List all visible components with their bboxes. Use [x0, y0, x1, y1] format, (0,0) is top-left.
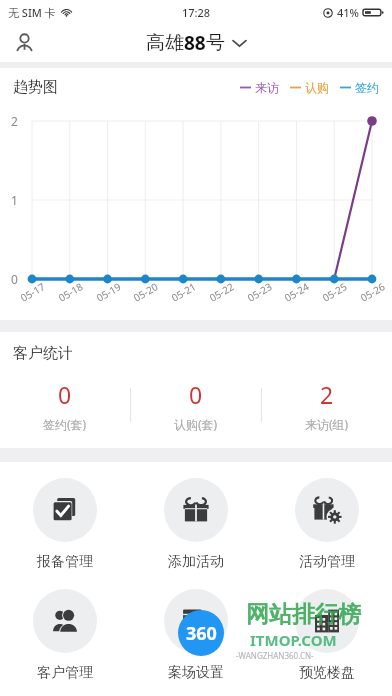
- staticText: 签约(套): [43, 416, 87, 432]
- staticText: 05-22: [206, 279, 237, 305]
- button[interactable]: 0: [131, 379, 261, 432]
- button[interactable]: 2: [262, 379, 392, 432]
- staticText: 2: [11, 113, 18, 129]
- staticText: 0: [58, 379, 72, 410]
- staticText: 0: [11, 271, 18, 287]
- staticText: 案场设置: [168, 664, 224, 682]
- staticText: 来访: [255, 80, 279, 95]
- staticText: 网站排行榜: [246, 600, 361, 629]
- staticText: 认购(套): [174, 416, 218, 432]
- button[interactable]: 添加活动: [130, 478, 261, 571]
- button[interactable]: Account: [6, 25, 42, 61]
- staticText: 88: [184, 30, 206, 56]
- staticText: 添加活动: [168, 553, 224, 571]
- staticText: 活动管理: [299, 553, 355, 571]
- staticText: 360: [186, 621, 217, 646]
- button[interactable]: 预览楼盘: [261, 589, 392, 682]
- staticText: 05-19: [93, 279, 124, 305]
- staticText: -WANGZHAN360.CN-: [236, 650, 314, 661]
- staticText: 签约: [355, 80, 379, 95]
- staticText: 高雄: [146, 31, 184, 55]
- staticText: 05-20: [130, 279, 161, 305]
- staticText: 客户管理: [37, 664, 93, 682]
- staticText: 05-18: [55, 279, 86, 305]
- staticText: 05-26: [357, 279, 388, 305]
- staticText: 号: [206, 31, 225, 55]
- button[interactable]: 认购: [290, 80, 329, 95]
- staticText: 来访(组): [305, 416, 349, 432]
- button[interactable]: 报备管理: [0, 478, 130, 571]
- button[interactable]: 签约: [340, 80, 379, 95]
- staticText: 41%: [337, 5, 359, 20]
- button[interactable]: 案场设置: [130, 589, 261, 682]
- button[interactable]: 活动管理: [261, 478, 392, 571]
- staticText: 05-17: [17, 279, 48, 305]
- staticText: 17:28: [182, 5, 211, 20]
- staticText: 报备管理: [37, 553, 93, 571]
- staticText: 05-21: [168, 279, 199, 305]
- staticText: 05-25: [319, 279, 350, 305]
- button[interactable]: 高雄: [146, 30, 246, 56]
- button[interactable]: 来访: [240, 80, 279, 95]
- button[interactable]: 0: [0, 379, 130, 432]
- button[interactable]: 客户管理: [0, 589, 130, 682]
- staticText: 趋势图: [13, 78, 58, 97]
- staticText: 无 SIM 卡: [8, 5, 56, 20]
- staticText: 2: [320, 379, 334, 410]
- staticText: 05-24: [281, 279, 312, 305]
- staticText: ITMOP.COM: [250, 630, 337, 650]
- staticText: 客户统计: [13, 344, 73, 363]
- staticText: 1: [11, 192, 18, 208]
- staticText: 预览楼盘: [299, 664, 355, 682]
- staticText: 认购: [305, 80, 329, 95]
- staticText: 05-23: [244, 279, 275, 305]
- staticText: 0: [189, 379, 203, 410]
